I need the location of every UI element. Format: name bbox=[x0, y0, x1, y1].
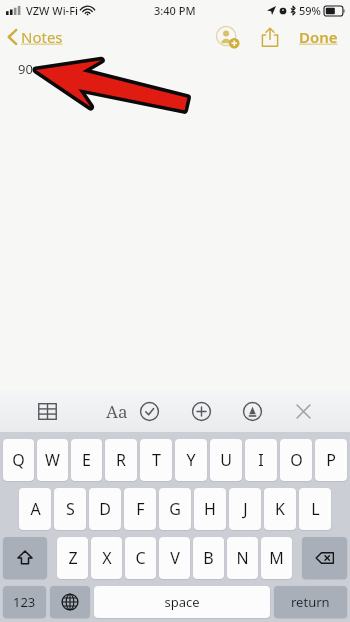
staticText: U bbox=[220, 449, 232, 471]
button[interactable]: E bbox=[71, 439, 102, 481]
button[interactable]: J bbox=[229, 488, 261, 530]
button[interactable]: Q bbox=[3, 439, 34, 481]
button[interactable]: Table bbox=[29, 393, 65, 429]
button[interactable]: M bbox=[261, 537, 292, 579]
button[interactable]: Switch keyboard bbox=[50, 586, 90, 618]
button[interactable]: B bbox=[193, 537, 224, 579]
button[interactable]: Text format bbox=[80, 393, 116, 429]
staticText: N bbox=[236, 547, 249, 569]
staticText: J bbox=[243, 498, 248, 520]
staticText: Q bbox=[12, 449, 25, 471]
staticText: O bbox=[290, 449, 303, 471]
button[interactable]: F bbox=[124, 488, 156, 530]
button[interactable]: Done bbox=[295, 23, 342, 51]
staticText: 3:40 PM bbox=[154, 3, 196, 18]
button[interactable]: A bbox=[19, 488, 51, 530]
staticText: D bbox=[99, 498, 111, 520]
button[interactable]: D bbox=[89, 488, 121, 530]
staticText: R bbox=[116, 449, 126, 471]
staticText: W bbox=[45, 449, 60, 471]
staticText: I bbox=[258, 449, 264, 471]
staticText: X bbox=[102, 547, 112, 569]
button[interactable]: O bbox=[280, 439, 312, 481]
button[interactable]: R bbox=[105, 439, 137, 481]
staticText: E bbox=[82, 449, 91, 471]
staticText: F bbox=[136, 498, 145, 520]
staticText: 90 bbox=[18, 60, 33, 78]
button[interactable]: V bbox=[159, 537, 190, 579]
staticText: A bbox=[30, 498, 41, 520]
button[interactable]: Z bbox=[57, 537, 88, 579]
staticText: C bbox=[135, 547, 146, 569]
button[interactable]: W bbox=[37, 439, 68, 481]
staticText: 59% bbox=[299, 3, 321, 18]
button[interactable]: Checklist bbox=[131, 393, 167, 429]
staticText: Y bbox=[186, 449, 196, 471]
button[interactable]: K bbox=[264, 488, 296, 530]
button[interactable]: Close keyboard bbox=[285, 393, 321, 429]
button[interactable]: Shift bbox=[3, 537, 47, 579]
button[interactable]: 123 bbox=[3, 586, 46, 618]
button[interactable]: Y bbox=[175, 439, 207, 481]
staticText: K bbox=[275, 498, 285, 520]
staticText: Done bbox=[299, 27, 338, 47]
button[interactable]: P bbox=[315, 439, 347, 481]
button[interactable]: T bbox=[140, 439, 172, 481]
staticText: Notes bbox=[21, 27, 63, 47]
button[interactable]: U bbox=[210, 439, 242, 481]
staticText: Aa bbox=[106, 400, 128, 423]
button[interactable]: space bbox=[94, 586, 270, 618]
button[interactable]: Add attachment bbox=[183, 393, 219, 429]
button[interactable]: S bbox=[54, 488, 86, 530]
button[interactable]: Add people bbox=[211, 20, 245, 54]
button[interactable]: L bbox=[299, 488, 331, 530]
button[interactable]: N bbox=[227, 537, 258, 579]
button[interactable]: H bbox=[194, 488, 226, 530]
button[interactable]: Share bbox=[253, 20, 287, 54]
button[interactable]: G bbox=[159, 488, 191, 530]
staticText: G bbox=[169, 498, 181, 520]
staticText: VZW Wi-Fi bbox=[26, 3, 78, 18]
staticText: Z bbox=[68, 547, 78, 569]
button[interactable]: Markup bbox=[234, 393, 270, 429]
staticText: V bbox=[170, 547, 180, 569]
staticText: return bbox=[291, 593, 330, 611]
staticText: space bbox=[164, 593, 200, 611]
staticText: M bbox=[269, 547, 284, 569]
staticText: S bbox=[66, 498, 75, 520]
staticText: B bbox=[203, 547, 214, 569]
staticText: L bbox=[311, 498, 320, 520]
button[interactable]: Backspace bbox=[302, 537, 347, 579]
button[interactable]: Notes bbox=[0, 23, 73, 51]
staticText: H bbox=[204, 498, 216, 520]
staticText: 123 bbox=[13, 593, 36, 611]
button[interactable]: I bbox=[245, 439, 277, 481]
button[interactable]: X bbox=[91, 537, 122, 579]
staticText: T bbox=[152, 449, 161, 471]
button[interactable]: return bbox=[274, 586, 347, 618]
staticText: P bbox=[326, 449, 336, 471]
button[interactable]: C bbox=[125, 537, 156, 579]
